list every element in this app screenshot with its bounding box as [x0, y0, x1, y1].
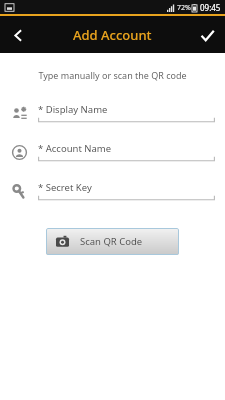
staticText: 72%: [177, 3, 191, 13]
staticText: 09:45: [200, 2, 221, 13]
staticText: Add Account: [73, 26, 152, 44]
button[interactable]: Save: [189, 17, 225, 53]
staticText: * Display Name: [38, 103, 108, 116]
staticText: * Account Name: [38, 142, 112, 155]
staticText: Type manually or scan the QR code: [0, 69, 225, 81]
button[interactable]: Scan QR Code: [46, 228, 179, 255]
button[interactable]: * Account Name: [12, 142, 215, 163]
button[interactable]: * Display Name: [12, 103, 215, 124]
button[interactable]: Back: [0, 17, 36, 53]
button[interactable]: * Secret Key: [12, 181, 215, 202]
staticText: Scan QR Code: [80, 235, 143, 248]
staticText: * Secret Key: [38, 181, 92, 194]
